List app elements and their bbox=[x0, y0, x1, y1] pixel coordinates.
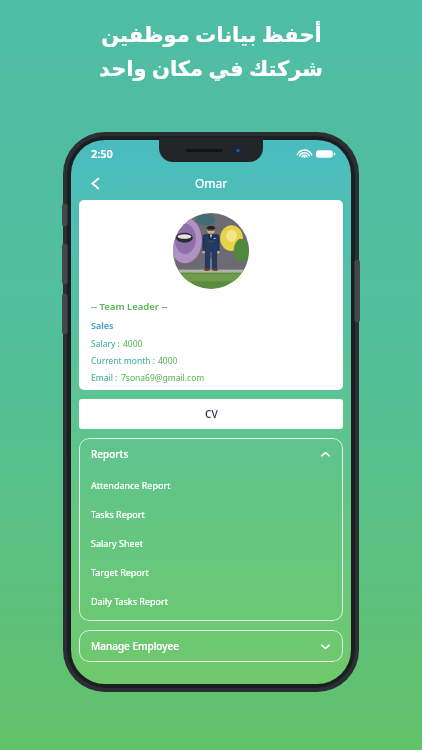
staticText: 4000 bbox=[158, 355, 178, 367]
staticText: Current month : bbox=[91, 355, 155, 367]
button[interactable]: Target Report bbox=[79, 557, 343, 586]
staticText: Tasks Report bbox=[91, 508, 145, 520]
staticText: Target Report bbox=[91, 566, 149, 578]
staticText: 4000 bbox=[123, 338, 143, 350]
staticText: أحفظ بيانات موظفين bbox=[101, 20, 322, 49]
staticText: CV bbox=[205, 407, 218, 421]
staticText: Manage Employee bbox=[91, 639, 180, 653]
staticText: Daily Tasks Report bbox=[91, 595, 168, 607]
staticText: Omar bbox=[195, 175, 228, 191]
button[interactable]: Manage Employee bbox=[79, 630, 343, 662]
button[interactable]: Back bbox=[79, 167, 111, 199]
staticText: Salary Sheet bbox=[91, 537, 143, 549]
staticText: Reports bbox=[91, 447, 129, 461]
button[interactable]: Reports bbox=[79, 438, 343, 470]
button[interactable]: Salary Sheet bbox=[79, 528, 343, 557]
button[interactable]: CV bbox=[79, 399, 343, 429]
staticText: شركتك في مكان واحد bbox=[99, 54, 323, 83]
button[interactable]: Attendance Report bbox=[79, 470, 343, 499]
staticText: Salary : bbox=[91, 338, 120, 350]
staticText: 2:50 bbox=[91, 146, 113, 161]
staticText: Attendance Report bbox=[91, 479, 171, 491]
staticText: Sales bbox=[91, 319, 114, 331]
button[interactable]: Tasks Report bbox=[79, 499, 343, 528]
button[interactable]: Daily Tasks Report bbox=[79, 586, 343, 615]
staticText: Email : bbox=[91, 372, 118, 384]
staticText: 7sona69@gmail.com bbox=[121, 372, 205, 384]
staticText: -- Team Leader -- bbox=[91, 300, 168, 313]
